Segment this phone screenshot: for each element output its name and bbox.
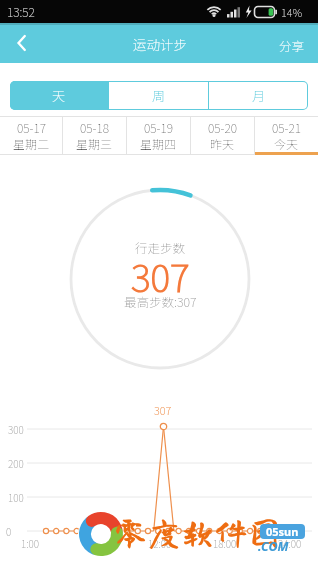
button[interactable]: 05-17 [0,116,62,155]
staticText: 月 [252,86,266,105]
staticText: 18:00 [213,536,237,550]
staticText: 0 [6,524,12,538]
staticText: 星期三 [76,135,113,152]
button[interactable] [266,23,318,63]
staticText: 分享 [279,36,305,54]
button[interactable]: 周 [109,81,208,110]
staticText: 运动计步 [133,34,187,54]
button[interactable]: 月 [209,81,308,110]
staticText: 24:00 [278,536,302,550]
staticText: 307 [131,248,190,298]
staticText: 05-18 [80,119,109,136]
staticText: 6:00 [86,536,104,550]
staticText: 100 [8,490,24,504]
staticText: 05-17 [17,119,46,136]
staticText: 05sun [266,524,299,539]
staticText: 星期四 [140,135,177,152]
staticText: 星期二 [13,135,50,152]
staticText: 今天 [274,135,299,152]
button[interactable] [0,23,44,63]
staticText: 05-19 [144,119,173,136]
staticText: 200 [8,456,24,470]
button[interactable]: 05-20 [191,116,254,155]
staticText: 周 [152,86,166,105]
staticText: 行走步数 [135,238,186,256]
staticText: 14% [281,4,303,20]
staticText: 13:52 [7,3,35,20]
staticText: 05-20 [208,119,237,136]
button[interactable]: 05-18 [63,116,126,155]
staticText: 300 [8,422,24,436]
staticText: 05-21 [272,119,301,136]
staticText: .COM [258,538,289,555]
staticText: 零度软件园 [114,515,282,548]
button[interactable]: 天 [10,81,108,110]
staticText: 1:00 [21,536,39,550]
staticText: 天 [52,86,66,105]
button[interactable]: 05-21 [255,116,318,155]
staticText: 最高步数:307 [124,292,197,310]
button[interactable]: 05-19 [127,116,190,155]
staticText: 昨天 [210,135,235,152]
staticText: 307 [154,402,172,418]
staticText: 12:00 [148,536,172,550]
